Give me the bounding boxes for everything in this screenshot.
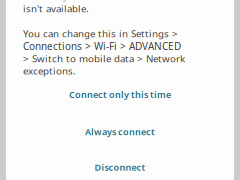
staticText: Always connect <box>85 126 155 138</box>
staticText: > Switch to mobile data > Network <box>23 52 185 65</box>
staticText: Disconnect <box>94 161 145 173</box>
staticText: isn't available. <box>23 2 89 15</box>
staticText: Connect only this time <box>69 88 171 100</box>
staticText: You can change this in Settings > <box>23 27 178 40</box>
staticText: exceptions. <box>23 64 76 77</box>
button[interactable]: Always connect <box>6 120 234 144</box>
staticText: Mobile sync is off and <box>23 0 126 3</box>
staticText: Connections > Wi-Fi > ADVANCED <box>23 39 181 53</box>
button[interactable]: Connect only this time <box>6 82 234 106</box>
button[interactable]: Disconnect <box>6 155 234 179</box>
